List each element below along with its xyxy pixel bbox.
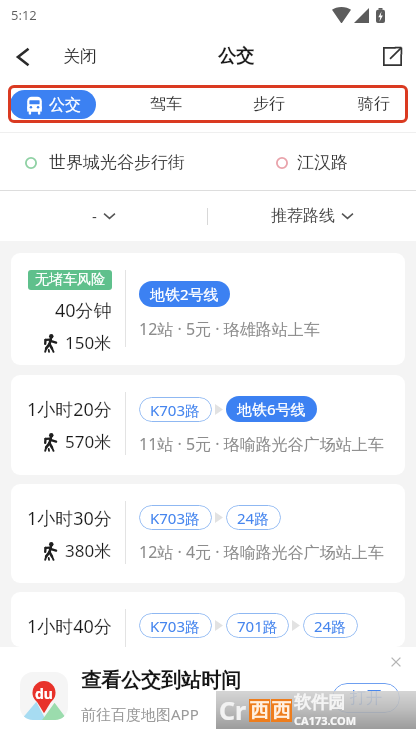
staticText: 西 xyxy=(250,699,269,722)
staticText: - xyxy=(92,206,97,226)
staticText: 24路 xyxy=(314,616,347,636)
staticText: K703路 xyxy=(150,616,201,636)
staticText: 关闭 xyxy=(63,46,97,67)
staticText: 世界城光谷步行街 xyxy=(49,152,185,173)
staticText: 推荐路线 xyxy=(271,206,335,226)
staticText: 打开 xyxy=(350,688,382,708)
button[interactable]: - xyxy=(0,191,207,241)
staticText: 11站 · 5元 · 珞喻路光谷广场站上车 xyxy=(139,433,384,455)
button[interactable]: 打开 xyxy=(332,683,400,713)
staticText: 公交 xyxy=(218,45,254,68)
staticText: 12站 · 4元 · 珞喻路光谷广场站上车 xyxy=(139,541,384,563)
staticText: 地铁6号线 xyxy=(237,399,306,419)
button[interactable]: 1小时30分 xyxy=(11,484,405,583)
staticText: 无堵车风险 xyxy=(35,271,105,289)
staticText: 公交 xyxy=(49,95,81,115)
staticText: 地铁2号线 xyxy=(150,284,219,304)
button[interactable]: 1小时20分 xyxy=(11,375,405,475)
staticText: 12站 · 5元 · 珞雄路站上车 xyxy=(139,318,320,340)
staticText: 24路 xyxy=(237,508,270,528)
staticText: 40分钟 xyxy=(55,298,112,323)
button[interactable]: 1小时40分 xyxy=(11,592,405,647)
staticText: K703路 xyxy=(150,508,201,528)
staticText: 软件园 xyxy=(294,692,345,713)
staticText: 步行 xyxy=(253,94,285,114)
staticText: 5:12 xyxy=(11,6,37,24)
staticText: 查看公交到站时间 xyxy=(81,668,241,693)
button[interactable]: 步行 xyxy=(239,88,299,120)
staticText: 380米 xyxy=(65,539,112,562)
staticText: 1小时20分 xyxy=(27,397,112,422)
staticText: Cr xyxy=(219,693,247,727)
button[interactable]: 在浏览器中打开 xyxy=(383,47,416,66)
staticText: 1小时40分 xyxy=(27,614,112,639)
staticText: K703路 xyxy=(150,400,201,420)
staticText: 570米 xyxy=(65,430,112,453)
staticText: 150米 xyxy=(65,331,112,354)
staticText: 西 xyxy=(272,699,291,722)
button[interactable]: 驾车 xyxy=(136,88,196,120)
staticText: 骑行 xyxy=(358,94,390,114)
button[interactable]: 公交 xyxy=(10,90,96,119)
staticText: 1小时30分 xyxy=(27,506,112,531)
button[interactable]: 骑行 xyxy=(344,88,404,120)
staticText: 701路 xyxy=(237,616,278,636)
button[interactable]: 无堵车风险 xyxy=(11,253,405,365)
button[interactable]: 关闭 xyxy=(0,46,109,67)
staticText: CA173.COM xyxy=(294,713,357,728)
staticText: 江汉路 xyxy=(297,152,348,173)
button[interactable]: 关闭 xyxy=(385,651,407,673)
button[interactable]: 江汉路 xyxy=(276,152,348,173)
staticText: du xyxy=(35,684,53,703)
staticText: 驾车 xyxy=(150,94,182,114)
staticText: 前往百度地图APP xyxy=(81,704,199,724)
button[interactable]: 推荐路线 xyxy=(208,191,416,241)
button[interactable]: 世界城光谷步行街 xyxy=(25,152,185,173)
